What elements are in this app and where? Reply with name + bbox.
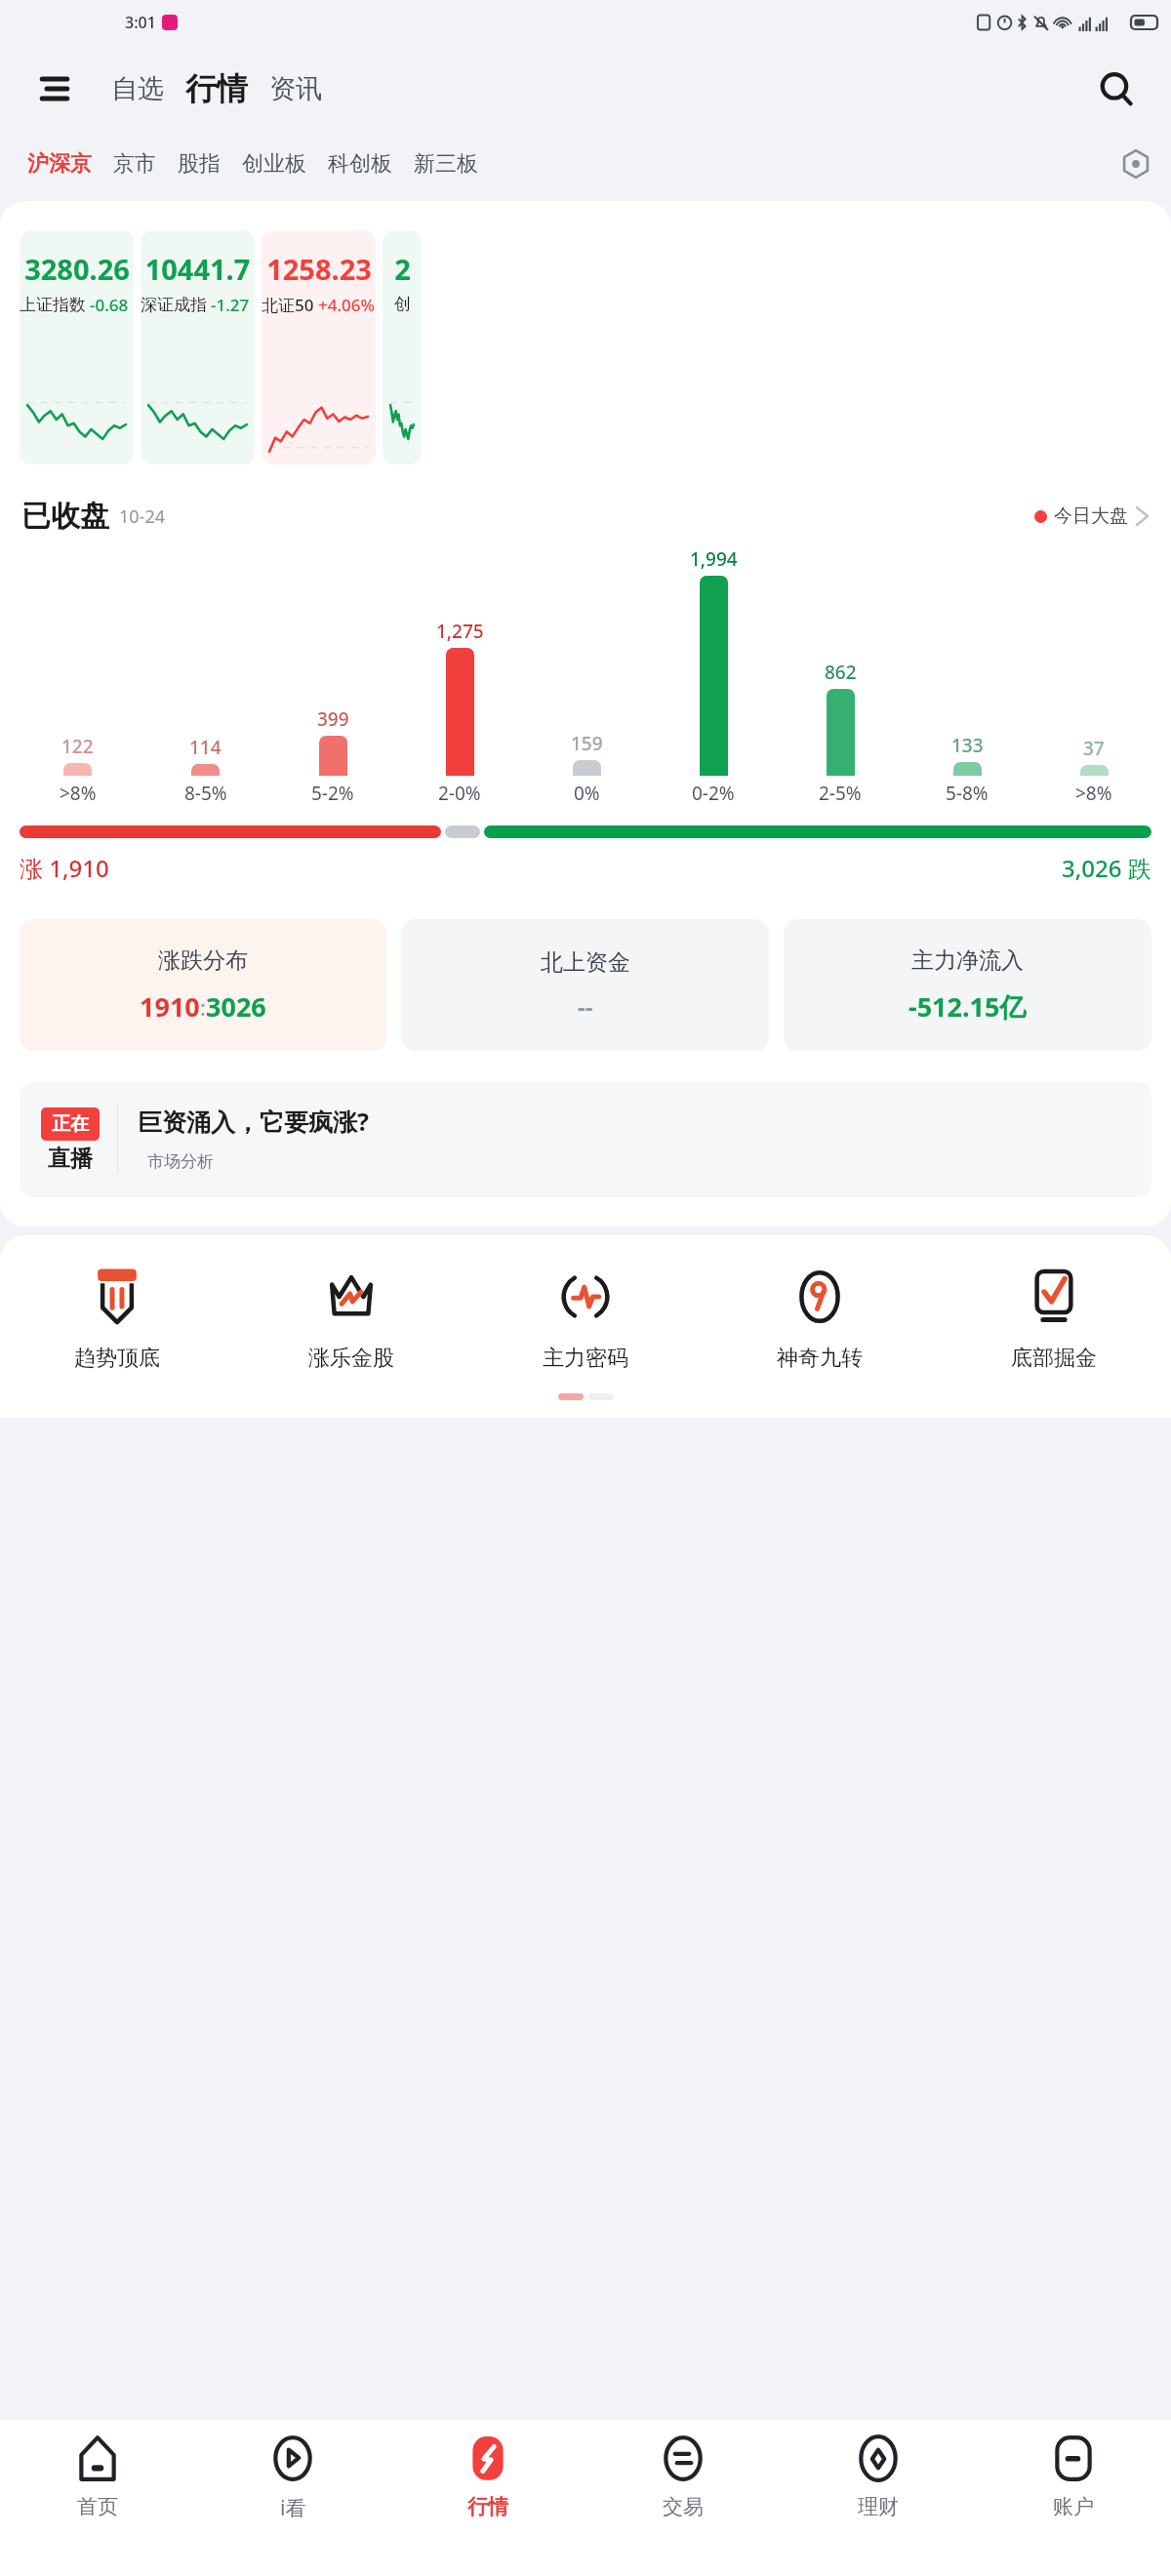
staticText: 2-5% xyxy=(819,781,862,806)
staticText: 北上资金 xyxy=(541,948,630,977)
button[interactable]: 北上资金 xyxy=(401,919,769,1051)
button[interactable]: i看 xyxy=(195,2434,390,2576)
staticText: 114 xyxy=(189,735,222,760)
staticText: 上证指数 xyxy=(20,295,86,315)
button[interactable]: 10441.75 xyxy=(141,230,255,464)
staticText: 创 xyxy=(394,294,411,314)
staticText: 122 xyxy=(61,734,94,759)
staticText: 首页 xyxy=(77,2494,118,2519)
button[interactable]: 行情 xyxy=(390,2434,585,2576)
button[interactable]: 正在 xyxy=(20,1082,1151,1197)
staticText: 3,026 跌 xyxy=(1062,852,1151,884)
staticText: 涨乐金股 xyxy=(308,1345,394,1372)
staticText: 涨 1,910 xyxy=(20,852,109,884)
staticText: -512.15亿 xyxy=(909,988,1027,1025)
button[interactable]: 自选 xyxy=(111,72,164,105)
staticText: 159 xyxy=(571,731,603,756)
button[interactable]: 涨乐金股 xyxy=(234,1267,468,1372)
staticText: 趋势顶底 xyxy=(74,1345,160,1372)
staticText: -0.68% xyxy=(90,294,134,316)
staticText: 行情 xyxy=(467,2494,508,2519)
staticText: 账户 xyxy=(1053,2494,1094,2519)
button[interactable]: 账户 xyxy=(976,2434,1171,2576)
staticText: 2-0% xyxy=(438,781,481,806)
staticText: 5-2% xyxy=(311,781,354,806)
button[interactable]: 京市 xyxy=(113,150,178,178)
staticText: 5-8% xyxy=(946,781,989,806)
staticText: 1,994 xyxy=(690,546,738,572)
staticText: 底部掘金 xyxy=(1011,1345,1097,1372)
staticText: 直播 xyxy=(48,1145,93,1173)
button[interactable]: 股指 xyxy=(178,150,242,178)
staticText: 399 xyxy=(317,706,349,732)
staticText: 3026 xyxy=(206,988,266,1025)
staticText: 1258.23 xyxy=(266,250,372,288)
staticText: 10-24 xyxy=(119,504,165,529)
button[interactable]: 2 xyxy=(383,230,422,464)
staticText: 巨资涌入，它要疯涨? xyxy=(138,1105,369,1138)
staticText: >8% xyxy=(1075,781,1112,806)
button[interactable]: 3280.26 xyxy=(20,230,134,464)
staticText: 北证50 xyxy=(262,294,314,316)
staticText: 深证成指 xyxy=(141,295,207,315)
staticText: -1.27% xyxy=(211,294,255,316)
staticText: 主力密码 xyxy=(543,1345,628,1372)
button[interactable]: 主力净流入 xyxy=(784,919,1151,1051)
button[interactable]: 神奇九转 xyxy=(703,1267,937,1372)
button[interactable]: 首页 xyxy=(0,2434,195,2576)
staticText: 862 xyxy=(825,660,857,685)
button[interactable]: Settings xyxy=(1110,139,1161,189)
button[interactable]: 交易 xyxy=(585,2434,781,2576)
staticText: 1910 xyxy=(140,988,200,1025)
staticText: 10441.75 xyxy=(141,250,255,288)
staticText: 市场分析 xyxy=(147,1151,214,1172)
staticText: 1,275 xyxy=(436,619,484,644)
button[interactable]: Menu xyxy=(27,61,82,116)
staticText: 133 xyxy=(951,733,984,758)
button[interactable]: 创业板 xyxy=(242,150,328,178)
button[interactable]: 1258.23 xyxy=(262,230,376,464)
button[interactable]: 新三板 xyxy=(414,150,500,178)
staticText: 37 xyxy=(1083,736,1105,761)
button[interactable]: 沪深京 xyxy=(27,150,113,178)
staticText: -- xyxy=(578,990,593,1023)
staticText: 已收盘 xyxy=(21,498,109,535)
button[interactable]: 主力密码 xyxy=(468,1267,703,1372)
staticText: 今日大盘 xyxy=(1054,504,1128,528)
staticText: 2 xyxy=(394,250,411,288)
button[interactable]: 涨跌分布 xyxy=(20,919,386,1051)
button[interactable]: 趋势顶底 xyxy=(0,1267,234,1372)
staticText: 0-2% xyxy=(692,781,735,806)
staticText: 主力净流入 xyxy=(911,946,1024,975)
staticText: 交易 xyxy=(663,2494,704,2519)
staticText: 3:01 xyxy=(125,12,156,33)
button[interactable]: 理财 xyxy=(781,2434,976,2576)
staticText: 8-5% xyxy=(184,781,227,806)
button[interactable]: 今日大盘 xyxy=(1034,504,1150,528)
staticText: +4.06% xyxy=(318,294,376,316)
staticText: 神奇九转 xyxy=(777,1345,863,1372)
staticText: 理财 xyxy=(858,2494,899,2519)
staticText: 3280.26 xyxy=(24,250,130,288)
staticText: >8% xyxy=(60,781,97,806)
staticText: i看 xyxy=(280,2494,306,2522)
staticText: 正在 xyxy=(52,1112,89,1136)
button[interactable]: 资讯 xyxy=(269,72,322,105)
staticText: 涨跌分布 xyxy=(158,946,248,975)
button[interactable]: Search xyxy=(1089,61,1144,116)
button[interactable]: 底部掘金 xyxy=(937,1267,1171,1372)
staticText: : xyxy=(200,992,206,1022)
button[interactable]: 行情 xyxy=(185,69,248,108)
button[interactable]: 科创板 xyxy=(328,150,414,178)
staticText: 0% xyxy=(574,781,600,806)
